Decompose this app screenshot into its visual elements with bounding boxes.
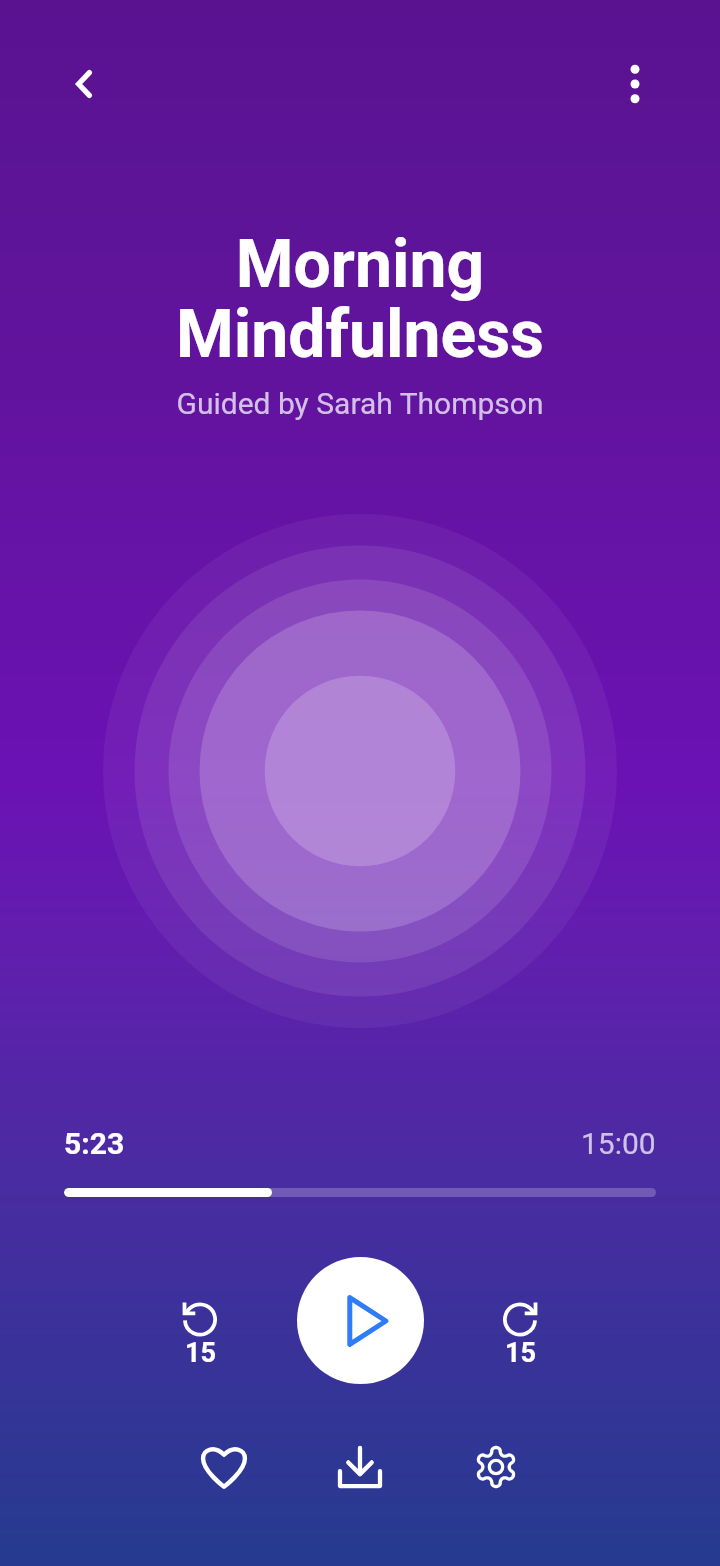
staticText: 15 xyxy=(505,1337,536,1368)
button[interactable]: Play xyxy=(297,1257,424,1384)
button[interactable]: More options xyxy=(603,52,667,116)
button[interactable]: Forward 15 seconds xyxy=(472,1272,568,1368)
button[interactable]: Settings xyxy=(448,1419,544,1515)
button[interactable]: Back xyxy=(52,52,116,116)
staticText: Morning Mindfulness xyxy=(176,226,544,374)
button[interactable]: Favourite xyxy=(176,1419,272,1515)
button[interactable]: Download xyxy=(312,1419,408,1515)
staticText: 15:00 xyxy=(581,1126,656,1161)
staticText: 15 xyxy=(185,1337,216,1368)
button[interactable]: Seek xyxy=(64,1188,656,1197)
button[interactable]: Rewind 15 seconds xyxy=(152,1272,248,1368)
staticText: Guided by Sarah Thompson xyxy=(176,386,544,421)
staticText: 5:23 xyxy=(64,1126,125,1161)
